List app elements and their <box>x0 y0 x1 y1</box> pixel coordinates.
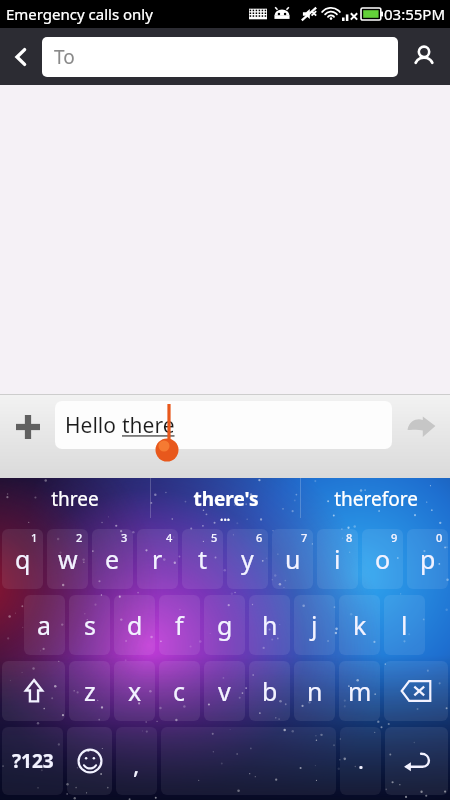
button[interactable]: Contacts <box>398 28 450 85</box>
button[interactable]: p <box>407 529 448 589</box>
staticText: 6 <box>256 530 263 545</box>
button[interactable]: t <box>182 529 223 589</box>
button[interactable]: Send <box>392 401 450 453</box>
staticText: q <box>15 542 31 576</box>
button[interactable]: Hello <box>55 401 392 449</box>
staticText: 3 <box>121 530 128 545</box>
staticText: there <box>122 411 175 440</box>
button[interactable]: q <box>2 529 43 589</box>
button[interactable]: therefore <box>301 478 450 526</box>
staticText: e <box>105 542 120 576</box>
button[interactable]: , <box>116 727 157 795</box>
button[interactable]: there's <box>151 478 300 526</box>
button[interactable]: x <box>114 661 155 721</box>
button[interactable]: d <box>114 595 155 655</box>
staticText: Emergency calls only <box>6 4 153 24</box>
staticText: h <box>262 608 278 642</box>
staticText: f <box>175 608 184 642</box>
staticText: t <box>198 542 208 576</box>
staticText: g <box>217 608 233 642</box>
button[interactable]: c <box>159 661 200 721</box>
button[interactable]: g <box>204 595 245 655</box>
staticText: p <box>420 542 436 576</box>
staticText: v <box>218 674 231 708</box>
staticText: ••• <box>220 513 231 525</box>
staticText: o <box>375 542 391 576</box>
staticText: 4 <box>166 530 173 545</box>
staticText: w <box>58 542 78 576</box>
staticText: . <box>358 745 364 775</box>
button[interactable]: r <box>137 529 178 589</box>
staticText: y <box>241 542 254 576</box>
button[interactable]: Backspace <box>384 661 448 721</box>
staticText: u <box>285 542 301 576</box>
staticText: j <box>311 608 318 642</box>
button[interactable]: v <box>204 661 245 721</box>
button[interactable]: m <box>339 661 380 721</box>
button[interactable]: . <box>340 727 381 795</box>
staticText: three <box>51 486 99 512</box>
staticText: a <box>37 608 52 642</box>
button[interactable]: h <box>249 595 290 655</box>
staticText: b <box>262 674 278 708</box>
staticText: Hello <box>65 411 122 440</box>
staticText: i <box>334 542 341 576</box>
button[interactable]: Emoji <box>67 727 112 795</box>
staticText: ?123 <box>12 748 54 774</box>
staticText: s <box>84 608 96 642</box>
staticText: there's <box>193 486 259 512</box>
staticText: 0 <box>436 530 443 545</box>
button[interactable]: b <box>249 661 290 721</box>
staticText: x <box>128 674 142 708</box>
staticText: k <box>353 608 367 642</box>
staticText: 03:55PM <box>384 4 446 24</box>
button[interactable]: f <box>159 595 200 655</box>
button[interactable]: z <box>69 661 110 721</box>
staticText: 5 <box>211 530 218 545</box>
staticText: therefore <box>334 486 418 512</box>
staticText: z <box>84 674 96 708</box>
button[interactable]: w <box>47 529 88 589</box>
staticText: 9 <box>391 530 398 545</box>
button[interactable]: Back <box>0 28 42 85</box>
button[interactable]: Add attachment <box>0 401 55 453</box>
staticText: c <box>173 674 186 708</box>
staticText: r <box>152 542 163 576</box>
button[interactable]: Enter <box>385 727 448 795</box>
staticText: 2 <box>76 530 83 545</box>
button[interactable]: u <box>272 529 313 589</box>
button[interactable]: Shift <box>2 661 65 721</box>
button[interactable]: l <box>384 595 425 655</box>
staticText: 1 <box>31 530 38 545</box>
staticText: 7 <box>301 530 308 545</box>
staticText: l <box>401 608 408 642</box>
staticText: d <box>127 608 143 642</box>
staticText: m <box>348 674 372 708</box>
button[interactable]: e <box>92 529 133 589</box>
button[interactable]: three <box>0 478 150 526</box>
button[interactable]: s <box>69 595 110 655</box>
button[interactable]: i <box>317 529 358 589</box>
button[interactable]: To <box>42 37 398 77</box>
staticText: , <box>133 748 140 781</box>
button[interactable]: a <box>24 595 65 655</box>
button[interactable]: ?123 <box>2 727 63 795</box>
button[interactable]: o <box>362 529 403 589</box>
button[interactable]: k <box>339 595 380 655</box>
staticText: 8 <box>346 530 353 545</box>
button[interactable]: j <box>294 595 335 655</box>
button[interactable]: Space <box>161 727 336 795</box>
staticText: To <box>54 44 75 70</box>
button[interactable]: n <box>294 661 335 721</box>
staticText: n <box>307 674 323 708</box>
button[interactable]: y <box>227 529 268 589</box>
